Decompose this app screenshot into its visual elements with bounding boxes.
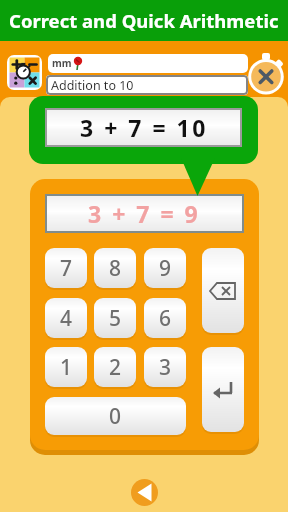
staticText: 3 bbox=[159, 353, 172, 382]
staticText: 1 bbox=[60, 353, 73, 382]
button[interactable] bbox=[131, 479, 158, 506]
staticText: 3 + 7 = 9 bbox=[88, 198, 201, 229]
staticText: Addition to 10 bbox=[51, 77, 134, 94]
staticText: mm bbox=[52, 56, 72, 70]
button[interactable]: Addition to 10 bbox=[46, 75, 248, 95]
button[interactable]: 9 bbox=[144, 248, 186, 288]
staticText: Correct and Quick Arithmetic bbox=[9, 8, 279, 33]
staticText: 4 bbox=[60, 304, 73, 333]
button[interactable] bbox=[202, 347, 244, 432]
staticText: 6 bbox=[159, 304, 172, 333]
staticText: 8 bbox=[109, 254, 122, 283]
button[interactable] bbox=[202, 248, 244, 333]
button[interactable]: 7 bbox=[45, 248, 87, 288]
button[interactable] bbox=[7, 55, 42, 90]
staticText: 3 + 7 = 10 bbox=[80, 112, 208, 143]
staticText: 2 bbox=[109, 353, 122, 382]
button[interactable]: 4 bbox=[45, 298, 87, 338]
button[interactable]: 0 bbox=[45, 397, 186, 435]
button[interactable]: mm bbox=[48, 54, 248, 73]
button[interactable]: 2 bbox=[94, 347, 136, 387]
button[interactable]: 6 bbox=[144, 298, 186, 338]
staticText: 0 bbox=[109, 402, 122, 431]
staticText: 7 bbox=[60, 254, 73, 283]
button[interactable]: 3 bbox=[144, 347, 186, 387]
button[interactable]: 5 bbox=[94, 298, 136, 338]
button[interactable] bbox=[246, 52, 286, 96]
button[interactable]: 8 bbox=[94, 248, 136, 288]
button[interactable]: 1 bbox=[45, 347, 87, 387]
staticText: 9 bbox=[159, 254, 172, 283]
staticText: 5 bbox=[109, 304, 122, 333]
